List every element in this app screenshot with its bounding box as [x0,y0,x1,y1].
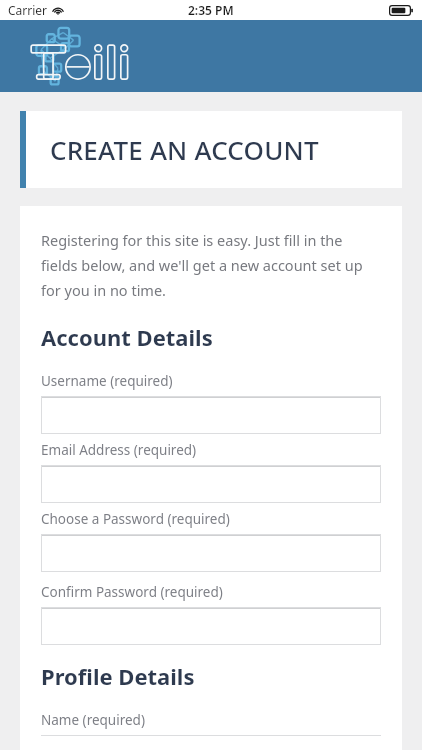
staticText: Confirm Password (required) [41,583,223,601]
button[interactable] [41,534,381,572]
button[interactable] [41,465,381,503]
staticText: Email Address (required) [41,441,197,459]
staticText: Name (required) [41,711,145,729]
button[interactable] [41,396,381,434]
staticText: Username (required) [41,372,173,390]
staticText: Choose a Password (required) [41,510,230,528]
staticText: 2:35 PM [188,2,234,18]
staticText: Carrier [8,2,48,18]
staticText: Profile Details [41,661,195,691]
staticText: CREATE AN ACCOUNT [50,132,319,167]
staticText: Registering for this site is easy. Just … [41,230,381,300]
button[interactable]: Teili home [24,24,154,88]
button[interactable]: CREATE AN ACCOUNT [20,111,402,188]
staticText: Account Details [41,322,213,352]
button[interactable] [41,607,381,645]
